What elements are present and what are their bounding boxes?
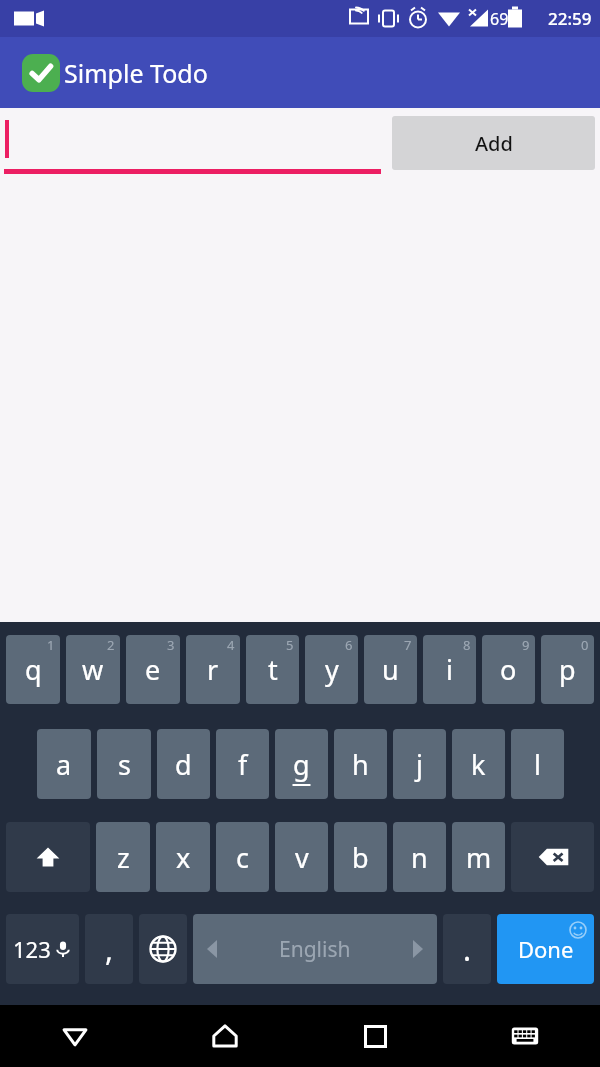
button[interactable]: [4, 117, 381, 174]
staticText: k: [471, 746, 486, 783]
staticText: m: [466, 839, 492, 876]
button[interactable]: o: [482, 635, 535, 704]
button[interactable]: Recent apps: [300, 1005, 450, 1067]
staticText: 8: [463, 636, 471, 654]
button[interactable]: u: [364, 635, 417, 704]
button[interactable]: g: [275, 729, 328, 799]
staticText: q: [25, 651, 42, 688]
button[interactable]: v: [275, 822, 328, 892]
staticText: r: [207, 651, 219, 688]
button[interactable]: Switch keyboard: [450, 1005, 600, 1067]
button[interactable]: Shift: [6, 822, 90, 892]
button[interactable]: r: [186, 635, 240, 704]
button[interactable]: k: [452, 729, 505, 799]
button[interactable]: Back: [0, 1005, 150, 1067]
button[interactable]: a: [37, 729, 91, 799]
staticText: 9: [522, 636, 530, 654]
staticText: p: [559, 651, 576, 688]
staticText: 7: [404, 636, 412, 654]
button[interactable]: s: [97, 729, 151, 799]
staticText: z: [117, 839, 130, 876]
staticText: 2: [107, 636, 115, 654]
button[interactable]: l: [511, 729, 564, 799]
staticText: 3: [167, 636, 175, 654]
button[interactable]: i: [423, 635, 476, 704]
staticText: .: [463, 929, 472, 970]
button[interactable]: h: [334, 729, 387, 799]
button[interactable]: Done: [497, 914, 594, 984]
staticText: 69%: [490, 8, 522, 30]
staticText: t: [268, 651, 278, 688]
button[interactable]: b: [334, 822, 387, 892]
button[interactable]: y: [305, 635, 358, 704]
staticText: v: [295, 839, 309, 876]
button[interactable]: n: [393, 822, 446, 892]
button[interactable]: x: [156, 822, 210, 892]
button[interactable]: Numbers and voice input: [6, 914, 79, 984]
staticText: 123: [13, 934, 51, 964]
staticText: l: [534, 746, 541, 783]
button[interactable]: Space: [193, 914, 437, 984]
staticText: n: [411, 839, 428, 876]
button[interactable]: Change language: [139, 914, 187, 984]
staticText: h: [352, 746, 369, 783]
staticText: Simple Todo: [64, 56, 208, 90]
staticText: x: [176, 839, 191, 876]
staticText: c: [236, 839, 249, 876]
staticText: o: [500, 651, 517, 688]
button[interactable]: z: [96, 822, 150, 892]
staticText: g: [293, 746, 310, 783]
staticText: 5: [286, 636, 294, 654]
staticText: 1: [47, 636, 55, 654]
button[interactable]: q: [6, 635, 60, 704]
button[interactable]: w: [66, 635, 120, 704]
staticText: j: [416, 746, 423, 783]
button[interactable]: f: [216, 729, 269, 799]
button[interactable]: Period: [443, 914, 491, 984]
button[interactable]: d: [157, 729, 210, 799]
button[interactable]: e: [126, 635, 180, 704]
button[interactable]: Backspace: [511, 822, 594, 892]
staticText: ,: [105, 929, 114, 970]
staticText: Add: [475, 130, 513, 157]
staticText: e: [145, 651, 161, 688]
button[interactable]: c: [216, 822, 269, 892]
staticText: 22:59: [548, 7, 592, 30]
staticText: d: [175, 746, 192, 783]
staticText: w: [82, 651, 104, 688]
button[interactable]: Add: [392, 116, 595, 170]
staticText: u: [382, 651, 399, 688]
staticText: i: [446, 651, 453, 688]
staticText: 6: [345, 636, 353, 654]
staticText: f: [238, 746, 248, 783]
staticText: s: [118, 746, 131, 783]
staticText: Done: [518, 934, 574, 964]
staticText: 4: [227, 636, 235, 654]
button[interactable]: j: [393, 729, 446, 799]
staticText: b: [352, 839, 369, 876]
staticText: a: [56, 746, 72, 783]
button[interactable]: m: [452, 822, 505, 892]
button[interactable]: t: [246, 635, 299, 704]
button[interactable]: p: [541, 635, 594, 704]
staticText: English: [279, 935, 351, 964]
staticText: y: [325, 651, 339, 688]
button[interactable]: Home: [150, 1005, 300, 1067]
staticText: 0: [581, 636, 589, 654]
button[interactable]: Comma: [85, 914, 133, 984]
